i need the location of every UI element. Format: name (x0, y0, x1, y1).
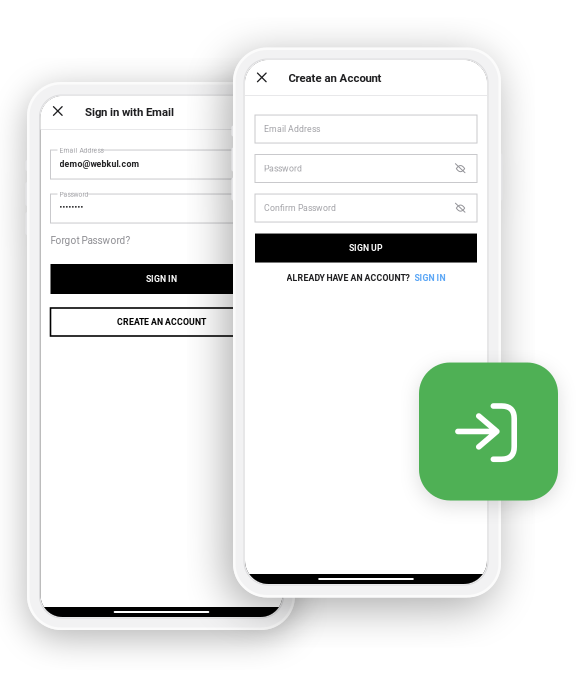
button[interactable]: Sign in with Email (40, 96, 282, 129)
staticText: SIGN UP (349, 243, 383, 253)
button[interactable]: Password (255, 154, 477, 182)
staticText: Email Address (264, 124, 320, 134)
button[interactable]: Email Address (255, 115, 477, 143)
button[interactable]: SIGN IN (50, 264, 272, 294)
button[interactable]: SIGN UP (255, 233, 477, 262)
button[interactable]: Forgot Password? (50, 234, 134, 247)
button[interactable]: Confirm Password (255, 194, 477, 222)
staticText: Create an Account (288, 71, 381, 85)
button[interactable]: CREATE AN ACCOUNT (50, 308, 272, 336)
staticText: CREATE AN ACCOUNT (117, 317, 206, 327)
button[interactable]: SIGN IN (414, 273, 445, 283)
staticText: •••••••• (59, 203, 83, 212)
staticText: Confirm Password (264, 203, 336, 213)
staticText: Forgot Password? (50, 235, 130, 246)
button[interactable]: Create an Account (245, 60, 487, 95)
staticText: SIGN IN (146, 274, 177, 284)
staticText: Password (264, 163, 302, 174)
staticText: Password (59, 190, 88, 198)
staticText: ALREADY HAVE AN ACCOUNT? (286, 273, 409, 283)
staticText: demo@webkul.com (59, 159, 139, 169)
staticText: SIGN IN (414, 273, 445, 283)
staticText: Sign in with Email (85, 105, 174, 119)
staticText: Email Address (59, 146, 103, 154)
